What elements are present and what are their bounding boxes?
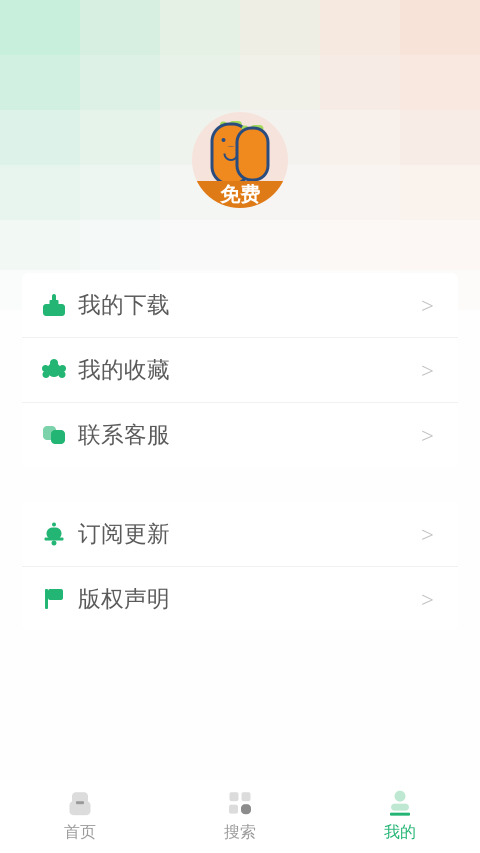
staticText: 我的 (384, 822, 416, 842)
button[interactable]: 我的下载 (22, 273, 458, 337)
button[interactable]: 首页 (0, 780, 160, 853)
staticText: 我的收藏 (78, 356, 170, 384)
button[interactable]: 联系客服 (22, 403, 458, 467)
staticText: 免费 (220, 182, 260, 207)
staticText: 订阅更新 (78, 520, 170, 548)
button[interactable]: 我的收藏 (22, 338, 458, 402)
staticText: 版权声明 (78, 585, 170, 613)
button[interactable]: 版权声明 (22, 567, 458, 631)
staticText: > (421, 519, 434, 549)
staticText: 我的下载 (78, 291, 170, 319)
button[interactable]: 搜索 (160, 780, 320, 853)
button[interactable]: 订阅更新 (22, 502, 458, 566)
staticText: > (421, 420, 434, 450)
staticText: 首页 (64, 822, 96, 842)
staticText: > (421, 290, 434, 320)
staticText: 联系客服 (78, 421, 170, 449)
staticText: 搜索 (224, 822, 256, 842)
staticText: > (421, 355, 434, 385)
button[interactable]: 我的 (320, 780, 480, 853)
staticText: > (421, 584, 434, 614)
